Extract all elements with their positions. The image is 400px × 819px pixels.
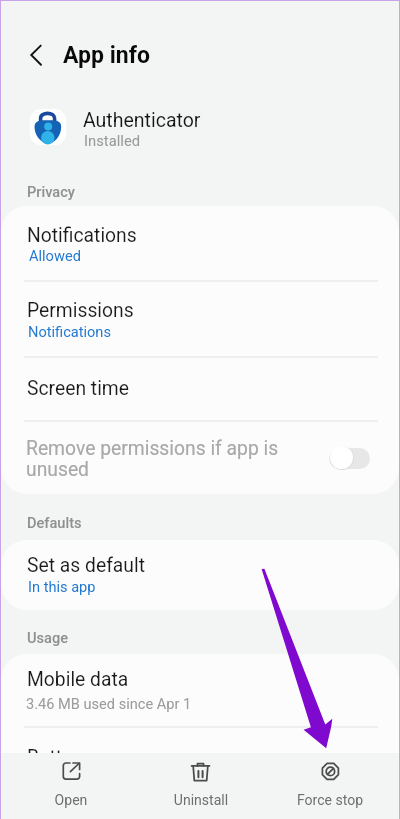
staticText: Set as default bbox=[27, 554, 145, 577]
button[interactable]: Remove permissions toggle bbox=[329, 448, 370, 469]
button[interactable]: Uninstall bbox=[136, 753, 266, 819]
staticText: Notifications bbox=[28, 323, 111, 340]
staticText: Notifications bbox=[27, 224, 137, 247]
button[interactable]: Remove permissions if app is unused bbox=[1, 422, 399, 495]
button[interactable]: Screen time bbox=[1, 358, 399, 421]
button[interactable]: Permissions bbox=[1, 283, 399, 357]
staticText: Privacy bbox=[27, 183, 75, 200]
staticText: Uninstall bbox=[151, 792, 251, 808]
button[interactable]: Set as default bbox=[1, 541, 399, 610]
staticText: In this app bbox=[28, 578, 96, 595]
staticText: Allowed bbox=[29, 247, 81, 264]
staticText: Usage bbox=[27, 629, 69, 646]
staticText: Installed bbox=[84, 132, 141, 149]
staticText: Force stop bbox=[280, 792, 380, 808]
staticText: Screen time bbox=[27, 377, 129, 400]
staticText: Defaults bbox=[27, 514, 82, 531]
button[interactable]: Force stop bbox=[265, 753, 395, 819]
button[interactable]: Open bbox=[6, 753, 136, 819]
staticText: 3.46 MB used since Apr 1 bbox=[26, 695, 192, 712]
staticText: Battery bbox=[27, 746, 89, 769]
button[interactable]: Notifications bbox=[1, 208, 399, 282]
staticText: Mobile data bbox=[27, 668, 129, 691]
staticText: Permissions bbox=[27, 299, 134, 322]
staticText: App info bbox=[63, 42, 150, 69]
staticText: Remove permissions if app is unused bbox=[26, 437, 279, 481]
button[interactable]: Mobile data bbox=[1, 655, 399, 727]
staticText: Authenticator bbox=[83, 109, 201, 132]
button[interactable]: Battery bbox=[1, 728, 399, 753]
button[interactable]: Back bbox=[13, 33, 55, 75]
staticText: Open bbox=[21, 792, 121, 808]
